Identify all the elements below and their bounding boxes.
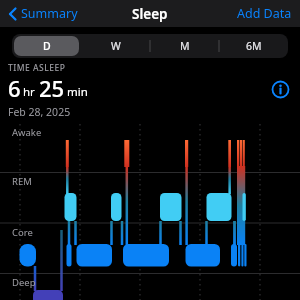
button[interactable]: 6M [219, 34, 288, 58]
button[interactable] [270, 79, 291, 100]
staticText: M [180, 39, 190, 53]
staticText: Core [12, 226, 33, 239]
staticText: Awake [12, 126, 42, 139]
staticText: 6 [8, 73, 21, 103]
staticText: D [43, 39, 51, 53]
button[interactable]: M [150, 34, 219, 58]
staticText: Summary [21, 5, 78, 22]
button[interactable]: D [14, 36, 79, 56]
staticText: 25 [39, 73, 65, 103]
staticText: Deep [12, 276, 36, 289]
staticText: 6M [246, 39, 262, 53]
staticText: Feb 28, 2025 [8, 105, 71, 119]
staticText: hr [23, 84, 35, 100]
button[interactable]: W [81, 34, 150, 58]
button[interactable]: Summary [6, 3, 80, 24]
staticText: Sleep [132, 5, 168, 23]
staticText: min [67, 84, 88, 100]
button[interactable]: Add Data [237, 5, 292, 22]
staticText: W [111, 39, 121, 53]
staticText: TIME ASLEEP [8, 62, 66, 74]
staticText: Add Data [237, 5, 292, 22]
staticText: REM [12, 175, 32, 188]
